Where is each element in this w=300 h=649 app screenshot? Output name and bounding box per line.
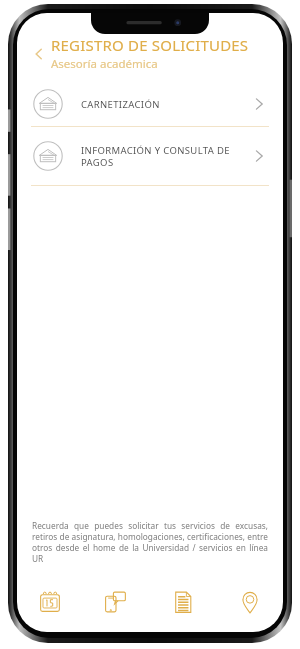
button[interactable]: Back: [27, 42, 51, 66]
button[interactable]: Calendar: [17, 582, 83, 622]
staticText: Recuerda que puedes solicitar tus servic…: [32, 520, 268, 564]
button[interactable]: Location: [216, 582, 283, 622]
button[interactable]: Documents: [149, 582, 216, 622]
staticText: INFORMACIÓN Y CONSULTA DE PAGOS: [81, 144, 251, 169]
button[interactable]: Messages: [83, 582, 149, 622]
button[interactable]: CARNETIZACIÓN: [17, 82, 283, 126]
staticText: REGISTRO DE SOLICITUDES: [51, 35, 249, 55]
button[interactable]: INFORMACIÓN Y CONSULTA DE PAGOS: [17, 127, 283, 185]
staticText: CARNETIZACIÓN: [81, 98, 251, 111]
staticText: Asesoría académica: [51, 56, 158, 72]
